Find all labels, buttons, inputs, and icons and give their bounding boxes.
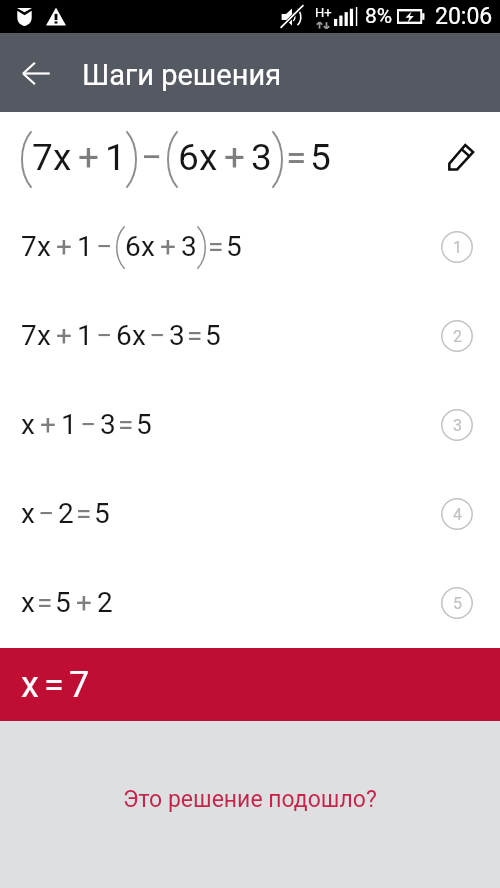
button[interactable]: Edit: [438, 135, 484, 181]
button[interactable]: x: [0, 469, 500, 558]
staticText: 7: [21, 319, 37, 352]
staticText: Это решение подошло?: [123, 786, 377, 813]
staticText: x: [37, 230, 51, 263]
staticText: =: [44, 664, 64, 706]
staticText: x: [37, 319, 51, 352]
staticText: 3: [169, 319, 185, 352]
staticText: x: [199, 136, 218, 179]
staticText: 3: [251, 136, 272, 179]
staticText: −: [80, 408, 97, 441]
staticText: 5: [55, 586, 71, 619]
button[interactable]: Back: [0, 40, 66, 106]
button[interactable]: x: [0, 648, 500, 721]
staticText: +: [56, 319, 72, 352]
staticText: x: [21, 664, 39, 706]
staticText: H+: [315, 5, 332, 20]
staticText: +: [224, 136, 245, 179]
staticText: 8%: [365, 4, 393, 29]
staticText: =: [286, 136, 307, 179]
staticText: x: [141, 230, 155, 263]
button[interactable]: 7: [0, 291, 500, 380]
staticText: 7: [21, 230, 37, 263]
staticText: −: [141, 136, 163, 179]
staticText: 1: [61, 408, 77, 441]
staticText: 3: [100, 408, 116, 441]
staticText: 2: [453, 327, 462, 346]
staticText: 1: [453, 238, 462, 257]
staticText: −: [96, 319, 113, 352]
staticText: +: [76, 586, 92, 619]
staticText: 6: [116, 319, 132, 352]
staticText: 1: [77, 230, 93, 263]
staticText: −: [96, 230, 113, 263]
staticText: +: [40, 408, 56, 441]
staticText: −: [149, 319, 166, 352]
staticText: +: [160, 230, 176, 263]
staticText: 6: [178, 136, 199, 179]
staticText: 2: [97, 586, 113, 619]
staticText: x: [132, 319, 146, 352]
button[interactable]: 7: [0, 202, 500, 291]
staticText: 4: [453, 505, 462, 524]
staticText: −: [38, 497, 55, 530]
staticText: 5: [136, 408, 152, 441]
staticText: 7: [32, 136, 53, 179]
staticText: +: [56, 230, 72, 263]
staticText: x: [21, 408, 35, 441]
staticText: =: [76, 497, 92, 530]
staticText: 6: [125, 230, 141, 263]
staticText: 5: [94, 497, 110, 530]
staticText: 7: [69, 664, 90, 706]
staticText: 5: [453, 594, 462, 613]
staticText: 20:06: [435, 3, 493, 30]
staticText: 3: [181, 230, 197, 263]
button[interactable]: x: [0, 558, 500, 647]
staticText: 2: [58, 497, 74, 530]
staticText: 1: [77, 319, 93, 352]
staticText: =: [37, 586, 53, 619]
staticText: =: [187, 319, 203, 352]
staticText: Шаги решения: [82, 58, 282, 92]
staticText: =: [118, 408, 134, 441]
button[interactable]: x: [0, 380, 500, 469]
staticText: x: [21, 497, 35, 530]
staticText: =: [208, 230, 224, 263]
staticText: 1: [105, 136, 126, 179]
staticText: 5: [226, 230, 242, 263]
staticText: +: [78, 136, 99, 179]
staticText: 5: [310, 136, 331, 179]
staticText: x: [53, 136, 72, 179]
staticText: 3: [453, 416, 462, 435]
staticText: x: [21, 586, 35, 619]
button[interactable]: Это решение подошло?: [123, 786, 377, 813]
staticText: 5: [205, 319, 221, 352]
